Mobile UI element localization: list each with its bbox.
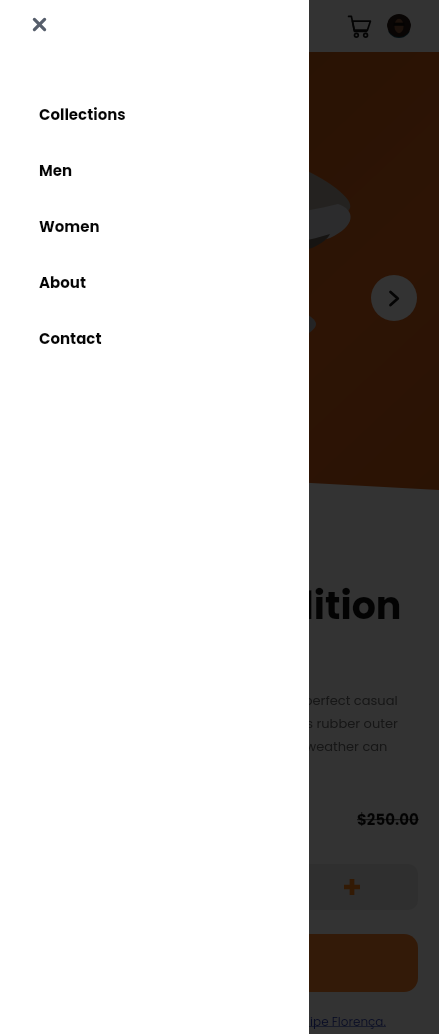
button[interactable]: Menu [18, 11, 48, 41]
button[interactable]: Contact [0, 310, 309, 366]
staticText: Women [39, 216, 100, 237]
staticText: Contact [39, 328, 102, 349]
button[interactable]: Increase quantity [333, 868, 371, 906]
staticText: About [39, 272, 86, 293]
staticText: Men [39, 160, 73, 181]
button[interactable]: Cart [342, 9, 376, 43]
staticText: This sneaker is a modern classic, and is… [21, 691, 421, 779]
button[interactable]: Add to cart [21, 934, 418, 992]
staticText: $250.00 [357, 809, 419, 830]
button[interactable]: Close menu [25, 10, 53, 38]
button[interactable]: Profile [387, 14, 411, 38]
button[interactable]: Women [0, 198, 309, 254]
button[interactable]: Next image [371, 275, 417, 321]
staticText: Collections [39, 104, 126, 125]
button[interactable]: Men [0, 142, 309, 198]
button[interactable]: Collections [0, 86, 309, 142]
button[interactable]: About [0, 254, 309, 310]
staticText: New Limited Edition [21, 579, 402, 632]
button[interactable]: Photo by Felipe Florença. [238, 1013, 386, 1030]
